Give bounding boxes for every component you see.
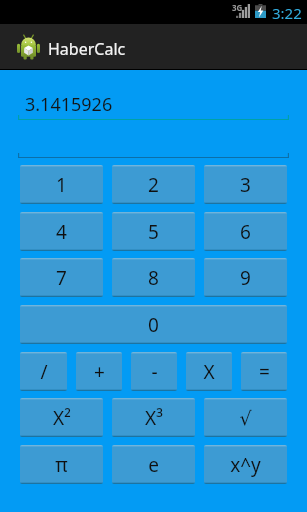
staticText: 5 xyxy=(148,219,159,245)
staticText: X xyxy=(203,359,215,385)
staticText: + xyxy=(94,359,105,385)
staticText: 8 xyxy=(148,265,159,291)
staticText: / xyxy=(40,359,48,385)
button[interactable]: 7 xyxy=(20,258,103,297)
button[interactable]: 9 xyxy=(204,258,287,297)
staticText: 4 xyxy=(56,219,67,245)
button[interactable]: 6 xyxy=(204,212,287,251)
button[interactable]: = xyxy=(241,352,287,391)
staticText: 1 xyxy=(56,172,67,198)
button[interactable]: x^y xyxy=(204,445,287,484)
button[interactable]: 8 xyxy=(112,258,195,297)
button[interactable]: π xyxy=(20,445,103,484)
button[interactable]: 1 xyxy=(20,165,103,204)
staticText: = xyxy=(259,359,270,385)
staticText: 3 xyxy=(240,172,251,198)
staticText: √ xyxy=(239,407,252,429)
button[interactable]: X³ xyxy=(112,398,195,437)
staticText: HaberCalc xyxy=(48,38,126,60)
button[interactable]: e xyxy=(112,445,195,484)
button[interactable]: + xyxy=(76,352,122,391)
staticText: x^y xyxy=(230,452,261,478)
button[interactable]: / xyxy=(20,352,67,391)
staticText: - xyxy=(151,359,158,385)
staticText: 3G xyxy=(232,2,243,13)
staticText: X³ xyxy=(145,405,163,431)
button[interactable]: 4 xyxy=(20,212,103,251)
button[interactable]: - xyxy=(131,352,177,391)
button[interactable]: √ xyxy=(204,398,287,437)
staticText: 3:22 xyxy=(272,3,302,23)
staticText: X² xyxy=(53,405,71,431)
button[interactable]: 2 xyxy=(112,165,195,204)
staticText: e xyxy=(148,452,159,478)
staticText: 7 xyxy=(56,265,67,291)
button[interactable]: 5 xyxy=(112,212,195,251)
staticText: 3.1415926 xyxy=(25,92,113,117)
staticText: 6 xyxy=(240,219,251,245)
button[interactable]: 0 xyxy=(20,305,287,344)
staticText: π xyxy=(55,452,68,478)
staticText: 9 xyxy=(240,265,251,291)
button[interactable]: 3 xyxy=(204,165,287,204)
button[interactable]: X xyxy=(186,352,232,391)
button[interactable]: HaberCalc app icon, home xyxy=(8,24,46,70)
staticText: 2 xyxy=(148,172,159,198)
button[interactable]: X² xyxy=(20,398,103,437)
staticText: 0 xyxy=(148,312,159,338)
